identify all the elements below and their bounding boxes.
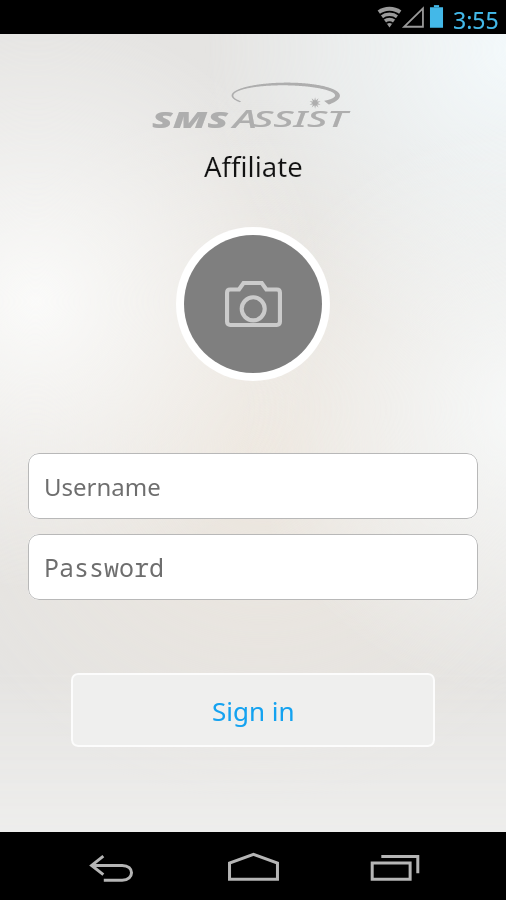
staticText: A (233, 101, 258, 135)
button[interactable]: Sign in (71, 673, 435, 747)
staticText: SMS (152, 103, 229, 134)
staticText: Password (44, 550, 165, 584)
other: Wi-Fi (369, 6, 410, 29)
button[interactable]: Recent apps (353, 842, 437, 892)
button[interactable]: Take photo (176, 227, 330, 381)
staticText: Username (44, 470, 161, 503)
button[interactable]: Back (71, 842, 155, 892)
button[interactable]: Password (28, 534, 478, 600)
other: Signal (403, 7, 424, 28)
staticText: SSIST (253, 105, 349, 134)
other: Battery (429, 4, 444, 29)
button[interactable]: Home (211, 842, 295, 892)
staticText: 3:55 (453, 4, 499, 35)
button[interactable]: Username (28, 453, 478, 519)
staticText: Affiliate (204, 148, 303, 185)
staticText: Sign in (212, 693, 295, 728)
